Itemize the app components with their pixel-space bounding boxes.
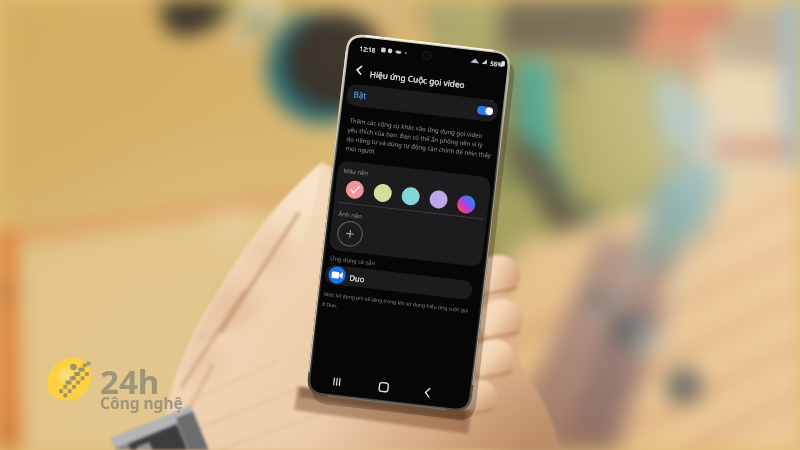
button[interactable]: Samsung phone showing Video call effects… <box>0 0 800 450</box>
